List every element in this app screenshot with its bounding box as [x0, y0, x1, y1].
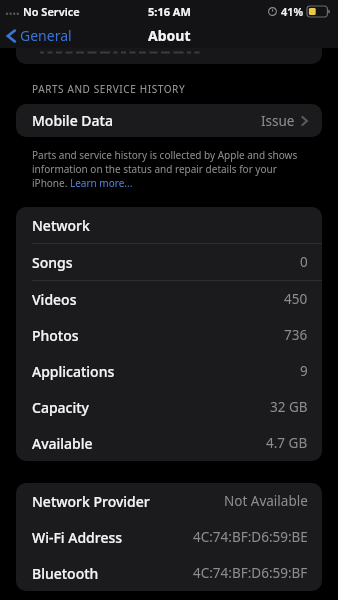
staticText: 4.7 GB [266, 434, 308, 452]
staticText: Parts and service history is collected b… [32, 148, 310, 190]
staticText: About [148, 26, 191, 45]
staticText: 32 GB [270, 398, 308, 416]
staticText: 450 [284, 290, 308, 308]
staticText: 736 [284, 326, 308, 344]
staticText: Not Available [224, 492, 308, 510]
button[interactable]: Videos [16, 281, 322, 317]
staticText: Network Provider [32, 492, 150, 511]
staticText: Capacity [32, 398, 89, 417]
staticText: Network [32, 216, 90, 235]
button[interactable]: Mobile Data [16, 104, 322, 137]
staticText: 41% [281, 4, 304, 19]
staticText: Available [32, 434, 93, 453]
button[interactable]: Available [16, 425, 322, 461]
staticText: 4C:74:BF:D6:59:BE [193, 528, 308, 546]
staticText: General [20, 26, 72, 45]
staticText: Wi-Fi Address [32, 528, 123, 547]
staticText: 4C:74:BF:D6:59:BF [193, 564, 308, 582]
button[interactable]: Bluetooth [16, 555, 322, 591]
button[interactable]: Network [16, 207, 322, 244]
button[interactable]: Capacity [16, 389, 322, 425]
staticText: Applications [32, 362, 115, 381]
staticText: Photos [32, 326, 79, 345]
staticText: PARTS AND SERVICE HISTORY [32, 82, 186, 96]
button[interactable]: Songs [16, 244, 322, 281]
button[interactable]: Network Provider [16, 483, 322, 519]
staticText: 0 [300, 253, 308, 271]
button[interactable]: Wi-Fi Address [16, 519, 322, 555]
staticText: Songs [32, 253, 73, 272]
button[interactable]: Photos [16, 317, 322, 353]
button[interactable]: Back to General [0, 23, 82, 48]
staticText: 9 [300, 362, 308, 380]
staticText: Videos [32, 290, 77, 309]
staticText: Issue [261, 112, 295, 130]
staticText: Bluetooth [32, 564, 99, 583]
staticText: 5:16 AM [148, 4, 191, 19]
staticText: No Service [23, 4, 80, 19]
staticText: Mobile Data [32, 111, 113, 130]
button[interactable]: Applications [16, 353, 322, 389]
